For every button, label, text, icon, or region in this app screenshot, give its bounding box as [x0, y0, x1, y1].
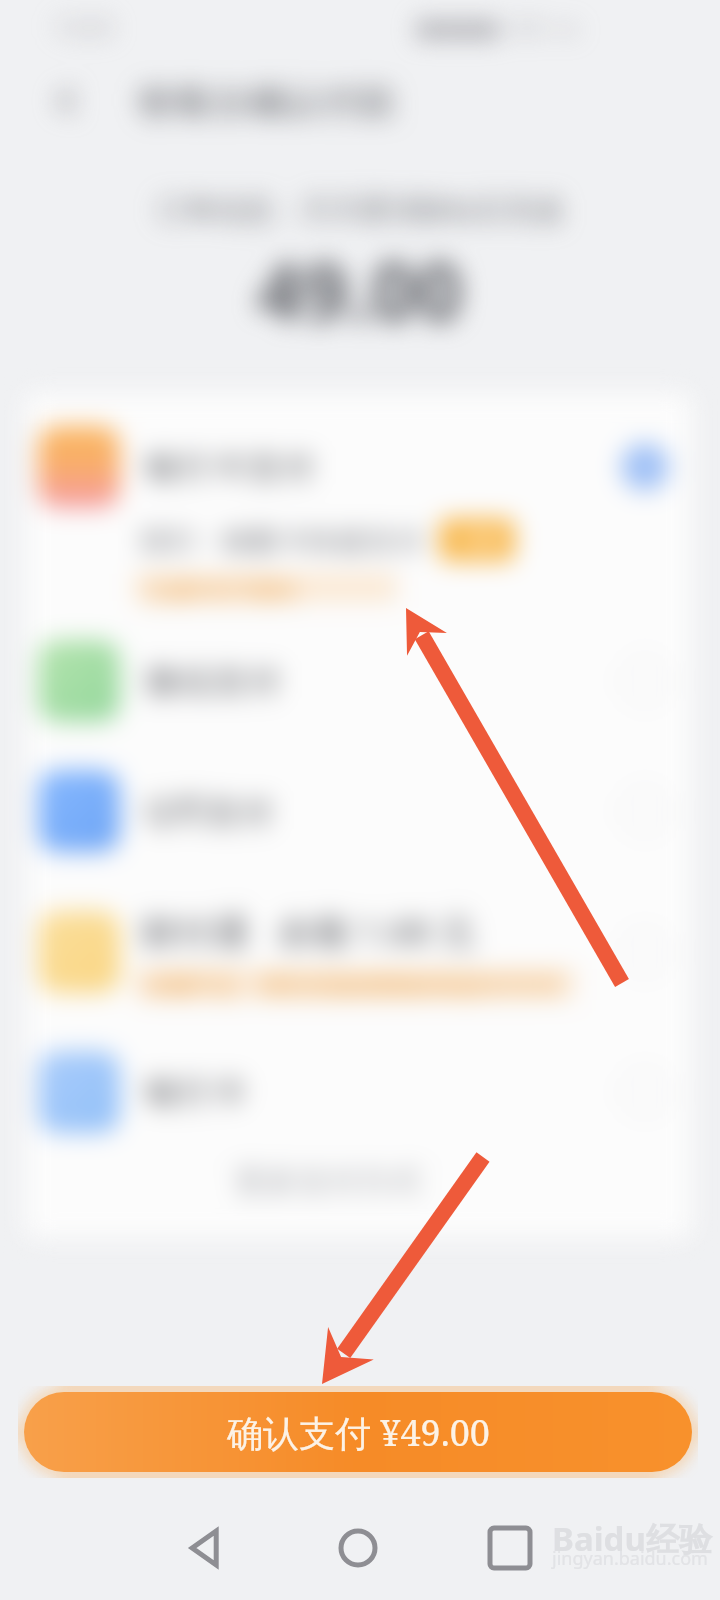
staticText: jingyan.baidu.com: [552, 1546, 708, 1571]
staticText: 财付通 余额 1.68 元: [141, 907, 476, 956]
button[interactable]: 银行卡: [25, 1020, 692, 1164]
staticText: 立减5元已抵扣: [134, 574, 298, 601]
staticText: 微信支付: [145, 660, 621, 703]
button[interactable]: 银行卡支付: [25, 393, 692, 541]
staticText: 确认支付 ¥49.00: [227, 1408, 490, 1457]
button[interactable]: Back: [46, 80, 88, 122]
staticText: 更多支付方式: [235, 1162, 421, 1201]
staticText: 立减: [455, 526, 499, 554]
staticText: 招行 · 储蓄卡快捷支付: [140, 520, 424, 560]
button[interactable]: Back: [175, 1518, 235, 1578]
button[interactable]: Home: [328, 1518, 388, 1578]
button[interactable]: [25, 878, 692, 1026]
staticText: [145, 929, 621, 975]
staticText: 银行卡支付: [145, 446, 621, 489]
staticText: 余额不足，请先充值或更换其他支付方式: [134, 969, 560, 997]
staticText: 49.00: [257, 235, 463, 344]
staticText: 订单信息：天天爱消除钻石充值: [157, 192, 563, 229]
button[interactable]: 确认支付 ¥49.00: [24, 1392, 692, 1472]
staticText: Baidu经验: [552, 1516, 712, 1561]
button[interactable]: Q币支付: [25, 747, 692, 875]
staticText: 收银台确认付款: [138, 78, 397, 125]
staticText: ●●●● ıl ıl ▭: [416, 10, 579, 43]
staticText: 银行卡: [145, 1071, 621, 1114]
staticText: Q币支付: [145, 788, 621, 834]
button[interactable]: 更多支付方式: [135, 1153, 521, 1209]
button[interactable]: 微信支付: [25, 621, 692, 741]
button[interactable]: Recent apps: [480, 1518, 540, 1578]
